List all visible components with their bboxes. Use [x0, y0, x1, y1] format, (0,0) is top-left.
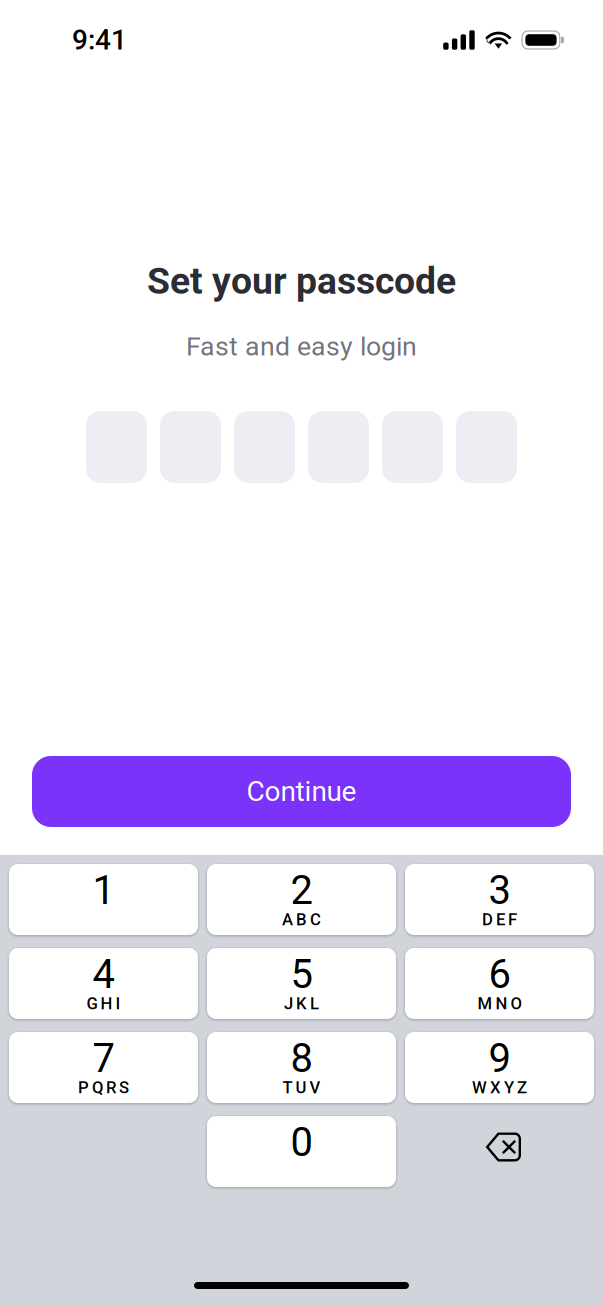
staticText: T U V: [282, 1078, 320, 1097]
button[interactable]: 0: [207, 1116, 396, 1187]
button[interactable]: 5: [207, 948, 396, 1019]
staticText: G H I: [86, 994, 120, 1013]
button[interactable]: 6: [405, 948, 594, 1019]
button[interactable]: Continue: [0, 756, 603, 827]
staticText: W X Y Z: [472, 1078, 527, 1097]
staticText: A B C: [282, 910, 321, 929]
button[interactable]: 2: [207, 864, 396, 935]
staticText: 2: [290, 867, 312, 914]
staticText: 5: [290, 951, 312, 998]
button[interactable]: 1: [9, 864, 198, 935]
staticText: 9: [488, 1035, 510, 1082]
button[interactable]: Delete: [405, 1116, 594, 1187]
staticText: 7: [92, 1035, 114, 1082]
button[interactable]: 7: [9, 1032, 198, 1103]
button[interactable]: 9: [405, 1032, 594, 1103]
staticText: J K L: [284, 994, 319, 1013]
staticText: 8: [290, 1035, 312, 1082]
staticText: 4: [92, 951, 114, 998]
staticText: 1: [92, 867, 114, 914]
staticText: P Q R S: [78, 1078, 129, 1097]
staticText: 0: [290, 1119, 312, 1166]
staticText: Fast and easy login: [186, 331, 417, 362]
staticText: D E F: [482, 910, 517, 929]
staticText: 3: [488, 867, 510, 914]
staticText: Set your passcode: [147, 259, 456, 303]
button[interactable]: 4: [9, 948, 198, 1019]
staticText: M N O: [477, 994, 521, 1013]
staticText: 9:41: [72, 24, 127, 56]
staticText: 6: [488, 951, 510, 998]
button[interactable]: 8: [207, 1032, 396, 1103]
button[interactable]: 3: [405, 864, 594, 935]
staticText: Continue: [246, 775, 356, 808]
